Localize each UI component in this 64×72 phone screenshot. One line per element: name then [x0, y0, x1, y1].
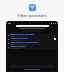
button[interactable]: [8, 45, 56, 49]
button[interactable]: Filter activities: [0, 13, 64, 19]
staticText: Filter activities: [17, 13, 47, 19]
button[interactable]: Toggle: [54, 38, 56, 40]
button[interactable]: App icon: [29, 4, 36, 11]
button[interactable]: Toggle: [8, 37, 56, 41]
button[interactable]: [8, 41, 56, 45]
button[interactable]: [8, 33, 56, 37]
